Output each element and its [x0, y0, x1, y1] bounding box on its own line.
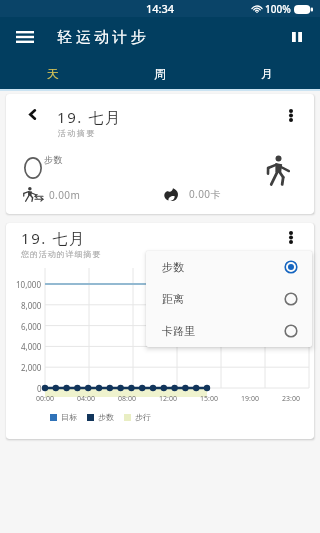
staticText: 10,000: [16, 279, 42, 290]
button[interactable]: Chart options: [280, 226, 302, 248]
button[interactable]: 天: [0, 57, 106, 89]
staticText: 距离: [162, 292, 184, 306]
staticText: 23:00: [282, 394, 300, 404]
staticText: 卡路里: [162, 324, 195, 338]
staticText: 0.00m: [49, 188, 81, 202]
staticText: 月: [261, 66, 273, 81]
staticText: 100%: [265, 2, 291, 16]
staticText: 00:00: [36, 394, 54, 404]
button[interactable]: 距离: [146, 283, 312, 315]
staticText: 8,000: [21, 300, 42, 311]
staticText: 14:34: [146, 1, 175, 16]
staticText: 04:00: [77, 394, 95, 404]
staticText: 12:00: [159, 394, 177, 404]
button[interactable]: 卡路里: [146, 315, 312, 347]
staticText: 周: [154, 66, 166, 81]
staticText: 步行: [135, 412, 151, 422]
staticText: 步数: [98, 412, 114, 422]
staticText: 您的活动的详细摘要: [21, 249, 102, 259]
staticText: 19:00: [241, 394, 259, 404]
button[interactable]: Menu: [8, 20, 42, 54]
button[interactable]: 步数: [146, 251, 312, 283]
staticText: 19. 七月: [21, 228, 86, 248]
staticText: 4,000: [21, 341, 42, 352]
staticText: 6,000: [21, 321, 42, 332]
staticText: 活动摘要: [57, 128, 95, 138]
button[interactable]: 月: [213, 57, 320, 89]
staticText: 15:00: [200, 394, 218, 404]
staticText: 0: [37, 383, 42, 394]
button[interactable]: Previous day: [21, 103, 43, 125]
staticText: 目标: [61, 412, 77, 422]
staticText: 19. 七月: [57, 107, 122, 127]
staticText: 轻运动计步: [56, 28, 147, 47]
staticText: 天: [47, 66, 59, 81]
staticText: 0.00卡: [189, 187, 221, 201]
staticText: 08:00: [118, 394, 136, 404]
button[interactable]: Pause: [280, 20, 314, 54]
staticText: 步数: [162, 260, 184, 274]
button[interactable]: More options: [280, 104, 302, 126]
button[interactable]: 周: [106, 57, 213, 89]
staticText: 2,000: [21, 362, 42, 373]
staticText: 步数: [44, 154, 64, 165]
